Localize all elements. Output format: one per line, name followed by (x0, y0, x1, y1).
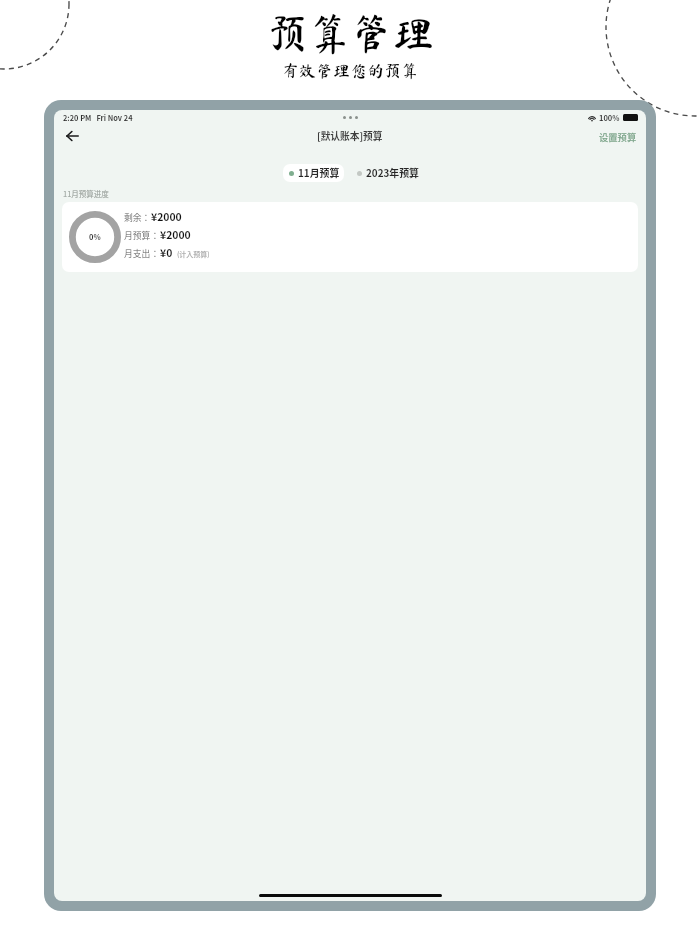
staticText: 11月预算进度 (63, 188, 109, 199)
staticText: 有效管理您的预算 (282, 62, 418, 79)
staticText: 11月预算 (298, 166, 340, 180)
staticText: [默认账本]预算 (317, 129, 383, 143)
button[interactable]: 0% (62, 202, 638, 272)
staticText: 100% (599, 112, 620, 123)
button[interactable]: Back (61, 125, 83, 147)
button[interactable]: 设置预算 (590, 126, 646, 147)
staticText: ¥2000 (160, 227, 191, 242)
staticText: 0% (89, 231, 101, 242)
button[interactable]: 11月预算 (283, 164, 344, 182)
staticText: 剩余： (124, 211, 151, 224)
staticText: 设置预算 (599, 130, 637, 143)
staticText: 月支出： (124, 247, 160, 260)
button[interactable]: 2023年预算 (351, 164, 424, 182)
staticText: 预算管理 (266, 12, 435, 54)
staticText: 2023年预算 (366, 166, 420, 180)
staticText: (计入预算) (177, 249, 210, 259)
staticText: ¥0 (160, 245, 173, 260)
staticText: 2:20 PM Fri Nov 24 (63, 112, 133, 123)
staticText: ¥2000 (151, 209, 182, 224)
staticText: 月预算： (124, 229, 160, 242)
